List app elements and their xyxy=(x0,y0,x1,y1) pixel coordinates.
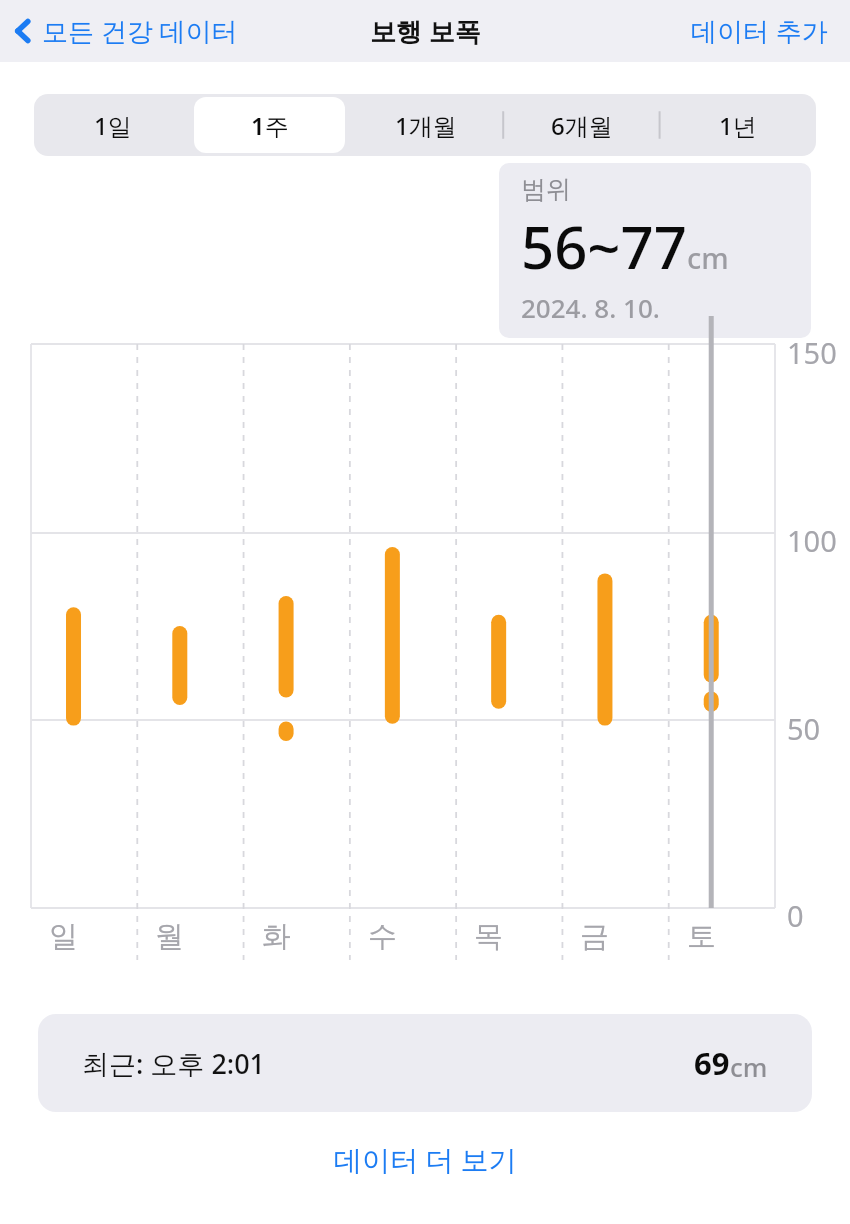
button[interactable]: 1개월 xyxy=(351,97,501,153)
staticText: cm xyxy=(730,1049,768,1084)
staticText: 100 xyxy=(787,521,837,560)
button[interactable]: 1주 xyxy=(194,97,345,153)
staticText: 69 xyxy=(694,1042,730,1084)
button[interactable]: 1년 xyxy=(663,97,813,153)
staticText: 화 xyxy=(262,918,291,955)
staticText: 56~77 xyxy=(521,207,687,286)
staticText: 금 xyxy=(580,918,609,955)
staticText: 1개월 xyxy=(395,109,457,142)
staticText: 토 xyxy=(687,918,716,955)
button[interactable]: 6개월 xyxy=(507,97,657,153)
staticText: 50 xyxy=(787,709,821,748)
staticText: 1일 xyxy=(94,109,132,142)
staticText: 월 xyxy=(155,918,184,955)
button[interactable]: 데이터 추가 xyxy=(669,3,850,59)
staticText: 2024. 8. 10. xyxy=(521,290,660,325)
staticText: 수 xyxy=(368,918,397,955)
staticText: 1년 xyxy=(719,109,757,142)
staticText: 1주 xyxy=(251,109,289,142)
staticText: 150 xyxy=(787,333,837,372)
staticText: 모든 건강 데이터 xyxy=(42,13,238,49)
staticText: 0 xyxy=(787,896,804,935)
staticText: 최근: 오후 2:01 xyxy=(82,1045,266,1082)
staticText: 일 xyxy=(49,918,78,955)
button[interactable]: 데이터 더 보기 xyxy=(0,1140,850,1178)
button[interactable]: Back xyxy=(12,13,244,49)
staticText: 보행 보폭 xyxy=(370,13,481,49)
staticText: 범위 xyxy=(521,174,571,205)
staticText: 6개월 xyxy=(551,109,613,142)
staticText: cm xyxy=(687,238,729,277)
button[interactable]: 최근: 오후 2:01 xyxy=(38,1014,812,1112)
staticText: 데이터 추가 xyxy=(691,13,828,49)
staticText: 목 xyxy=(474,918,503,955)
button[interactable]: 1일 xyxy=(37,97,188,153)
other: Back xyxy=(12,16,34,46)
staticText: 데이터 더 보기 xyxy=(334,1140,517,1178)
